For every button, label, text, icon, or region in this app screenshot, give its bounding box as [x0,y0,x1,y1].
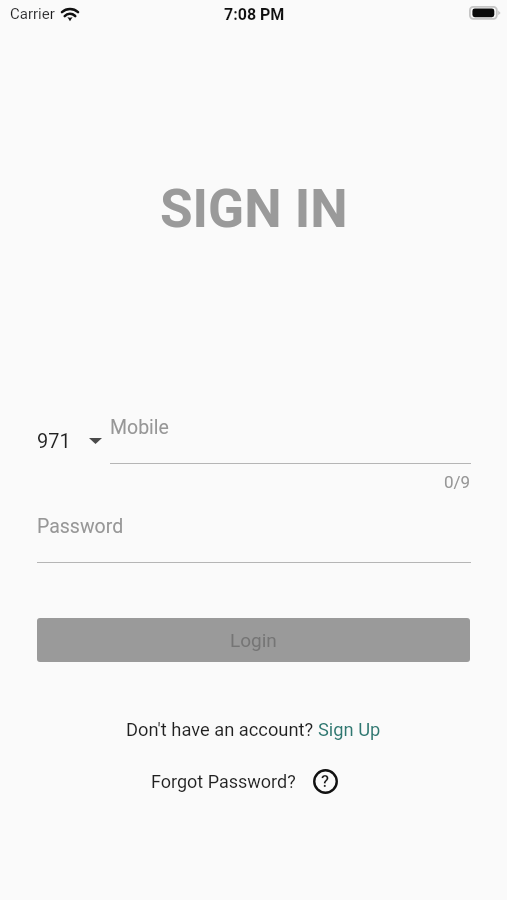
staticText: 0/9 [444,472,471,492]
staticText: Forgot Password? [151,771,296,792]
staticText: Don't have an account? [126,719,318,740]
button[interactable]: Help [313,769,338,794]
staticText: 971 [37,429,71,452]
button[interactable]: Forgot Password? [151,771,296,792]
staticText: SIGN IN [160,178,348,240]
staticText: ? [321,772,330,791]
button[interactable]: Sign Up [318,719,381,740]
staticText: Sign Up [318,719,381,740]
button[interactable]: Password [37,515,471,563]
button[interactable]: 971 [25,423,114,458]
button[interactable]: Mobile [110,416,471,464]
staticText: Carrier [10,5,55,23]
staticText: Login [230,629,277,651]
staticText: Password [37,515,124,538]
staticText: Mobile [110,416,169,439]
button[interactable]: Login [37,618,470,662]
staticText: 7:08 PM [224,5,285,24]
